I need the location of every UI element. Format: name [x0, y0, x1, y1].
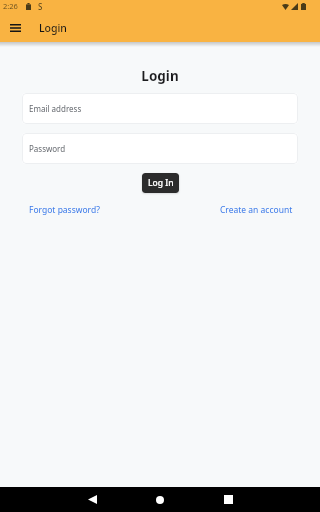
button[interactable]: Log In — [142, 173, 179, 193]
staticText: S — [38, 1, 43, 12]
button[interactable]: Create an account — [220, 203, 293, 217]
button[interactable]: Home — [143, 487, 177, 512]
staticText: Email address — [29, 103, 82, 114]
staticText: Login — [0, 67, 320, 85]
button[interactable]: Back — [75, 487, 109, 512]
staticText: 2:26 — [3, 1, 18, 11]
button[interactable]: Email address — [22, 93, 298, 124]
staticText: Create an account — [220, 204, 293, 216]
button[interactable]: Recent apps — [211, 487, 245, 512]
button[interactable]: Password — [22, 133, 298, 164]
staticText: Login — [39, 21, 67, 35]
staticText: Password — [29, 143, 66, 154]
staticText: Log In — [148, 177, 174, 189]
staticText: Forgot password? — [29, 204, 100, 216]
button[interactable]: Open navigation menu — [0, 16, 30, 42]
button[interactable]: Forgot password? — [29, 203, 100, 217]
